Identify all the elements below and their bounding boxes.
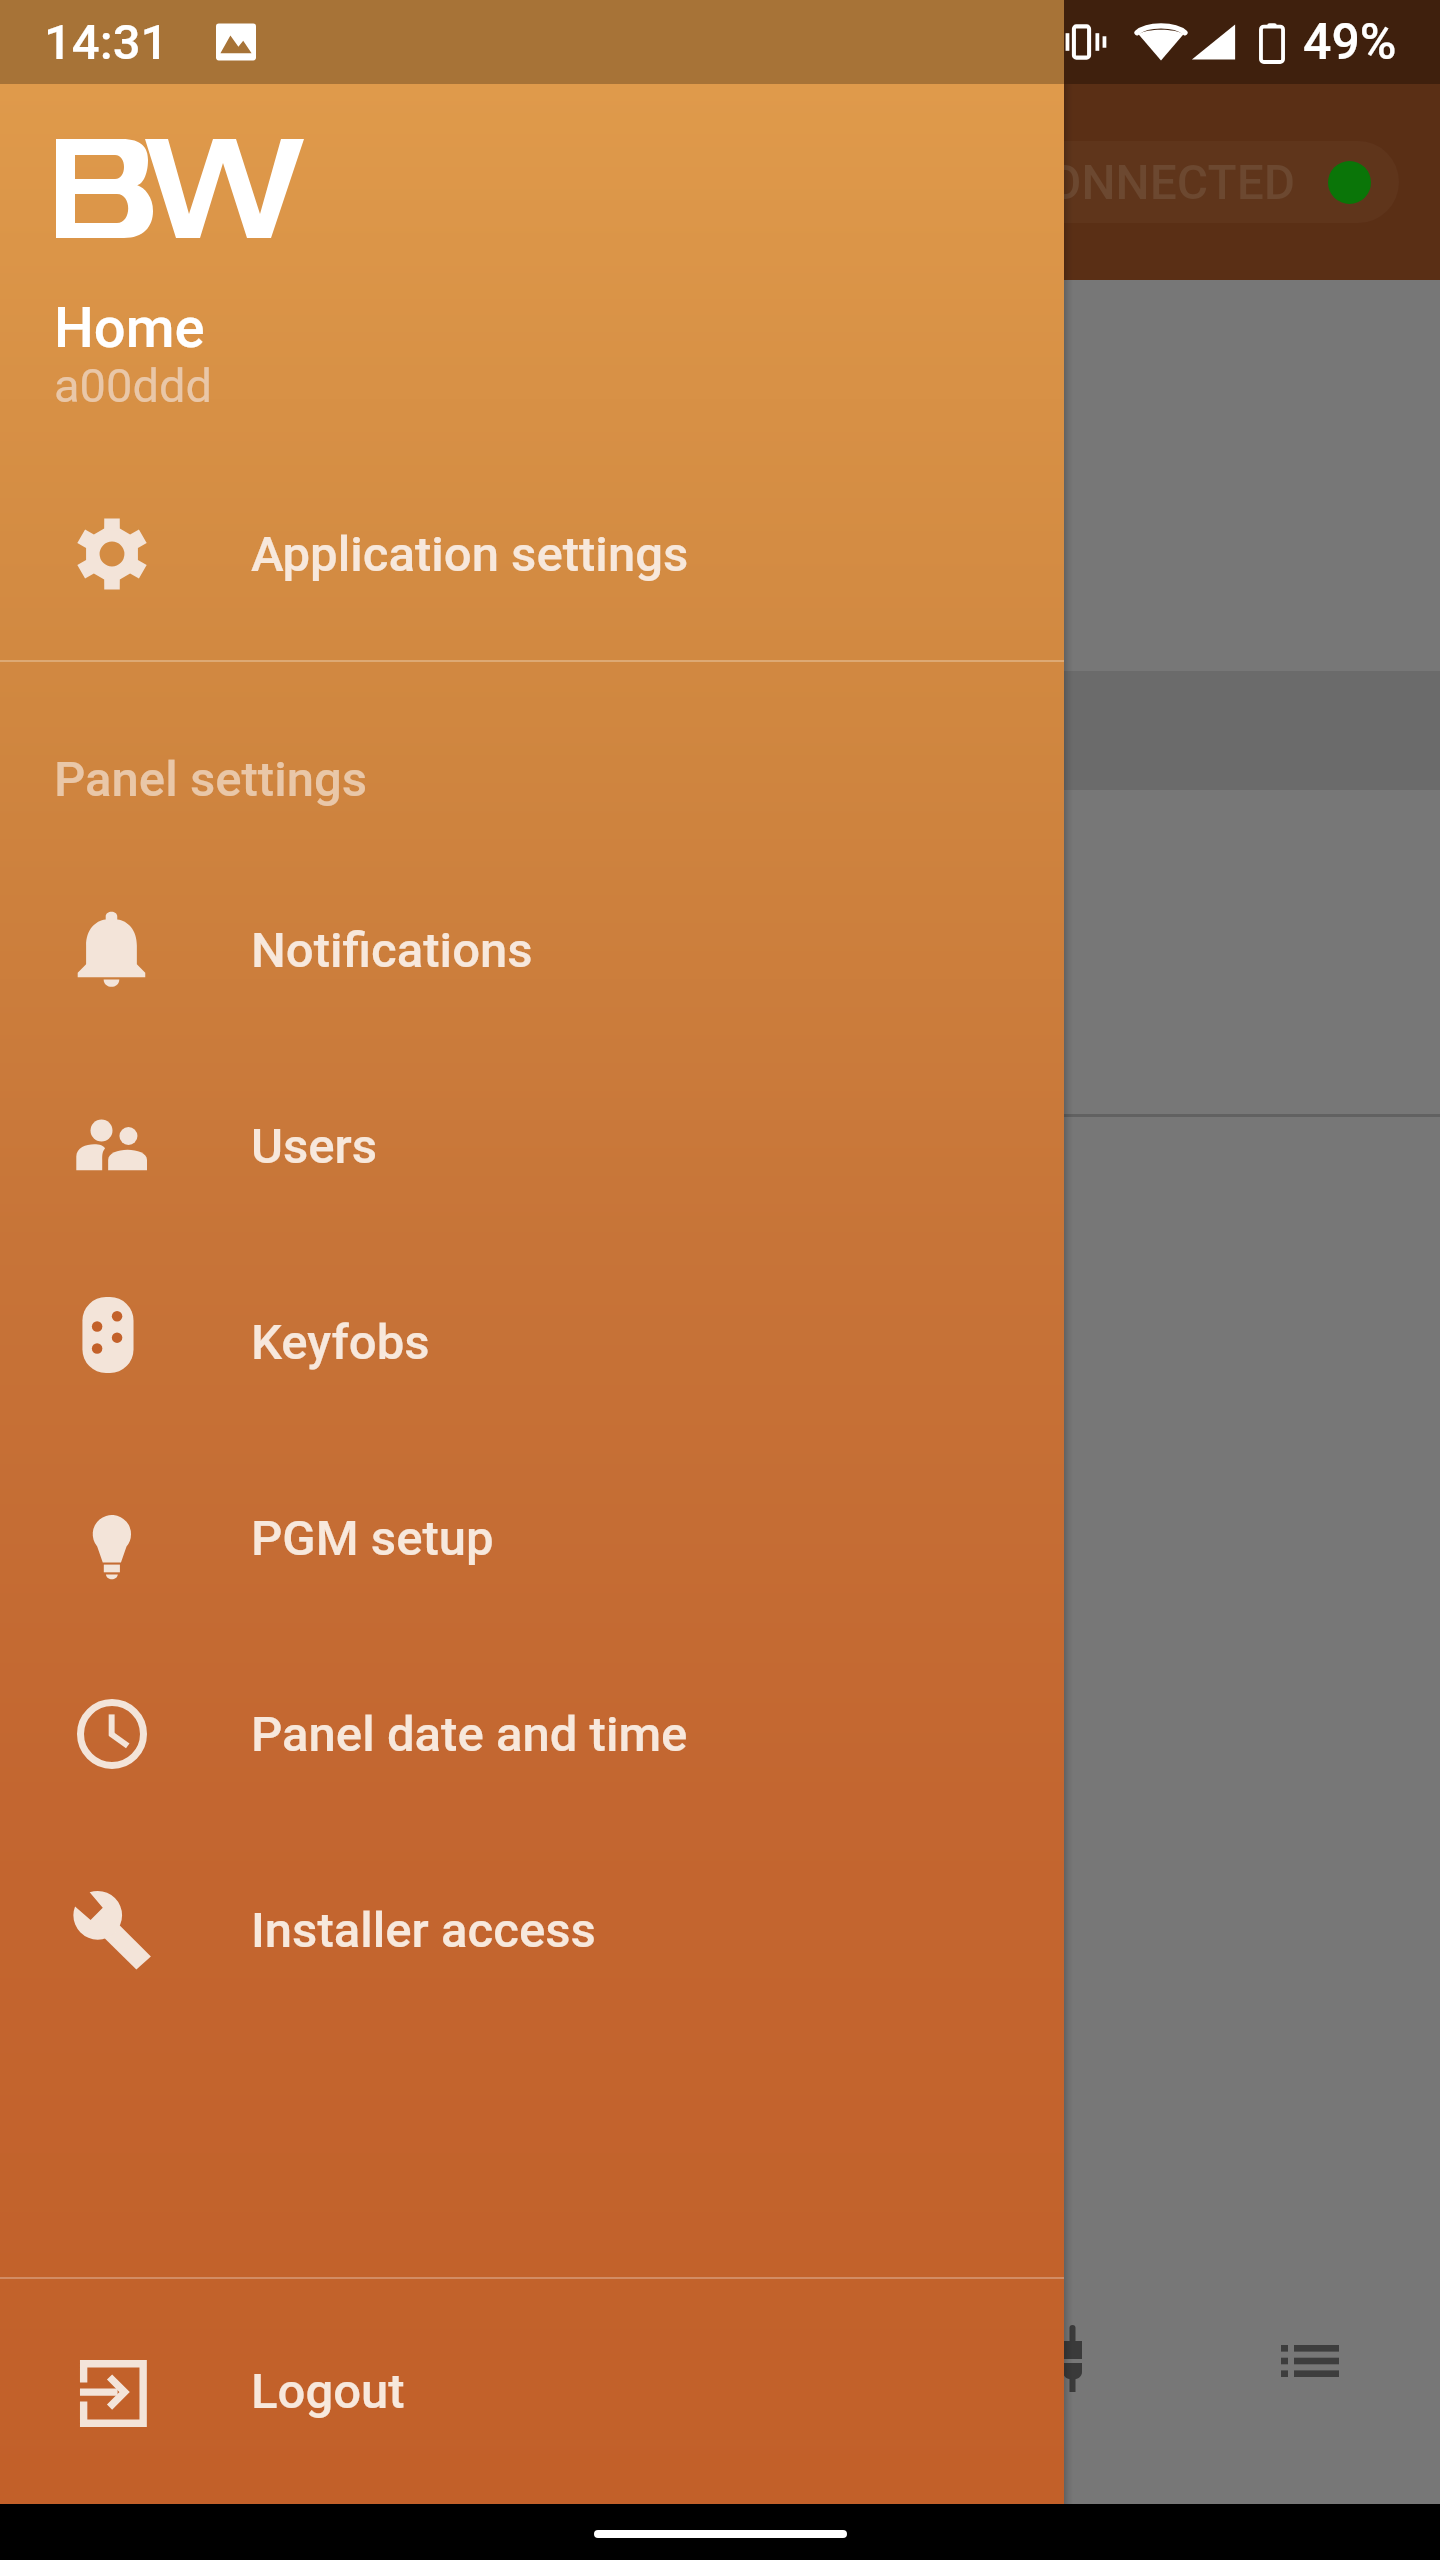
button[interactable]: Application settings — [0, 456, 1064, 652]
staticText: 14:31 — [44, 14, 169, 71]
button[interactable]: Users — [0, 1048, 1064, 1244]
staticText: CONNECTED — [1017, 154, 1296, 210]
button[interactable]: CONNECTED — [839, 141, 1399, 223]
staticText: Installer access — [251, 1902, 596, 1959]
button[interactable]: Devices — [1021, 2307, 1124, 2410]
staticText: Panel date and time — [251, 1706, 688, 1763]
staticText: Keyfobs — [251, 1314, 430, 1371]
staticText: Users — [251, 1118, 378, 1175]
staticText: Notifications — [251, 922, 533, 979]
button[interactable]: Close navigation drawer — [0, 280, 1440, 2504]
staticText: Application settings — [251, 526, 689, 583]
staticText: Panel settings — [54, 751, 368, 808]
staticText: 49% — [1303, 13, 1397, 72]
button[interactable]: Panel date and time — [0, 1636, 1064, 1832]
button[interactable]: Installer access — [0, 1832, 1064, 2028]
button[interactable]: Events — [1258, 2309, 1361, 2412]
button[interactable]: Keyfobs — [0, 1244, 1064, 1440]
staticText: Logout — [251, 2363, 405, 2420]
staticText: Home — [54, 295, 205, 361]
button[interactable]: Notifications — [0, 852, 1064, 1048]
button[interactable]: Logout — [0, 2293, 1064, 2489]
staticText: a00ddd — [54, 358, 212, 413]
button[interactable]: PGM setup — [0, 1440, 1064, 1636]
staticText: PGM setup — [251, 1510, 494, 1567]
